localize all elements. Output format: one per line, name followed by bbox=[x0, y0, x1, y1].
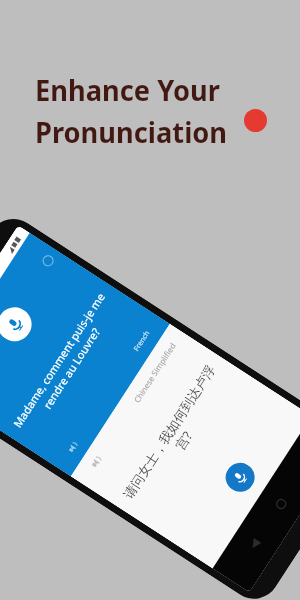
button[interactable]: Speak bbox=[220, 457, 260, 497]
button[interactable]: Listen bbox=[65, 439, 81, 455]
staticText: Enhance Your bbox=[35, 70, 220, 109]
staticText: rendre au Louvre? bbox=[39, 325, 103, 412]
staticText: 请问女士，我如何到达卢浮 bbox=[120, 362, 218, 501]
staticText: Pronunciation bbox=[35, 112, 228, 151]
button[interactable]: Listen bbox=[88, 453, 106, 471]
button[interactable]: Microphone bbox=[0, 301, 38, 348]
staticText: French bbox=[132, 328, 153, 353]
staticText: Madame, comment puis-je me bbox=[9, 290, 108, 430]
staticText: 宫? bbox=[171, 428, 196, 453]
staticText: Chinese Simplified bbox=[131, 340, 178, 405]
button[interactable]: Options bbox=[40, 253, 56, 268]
